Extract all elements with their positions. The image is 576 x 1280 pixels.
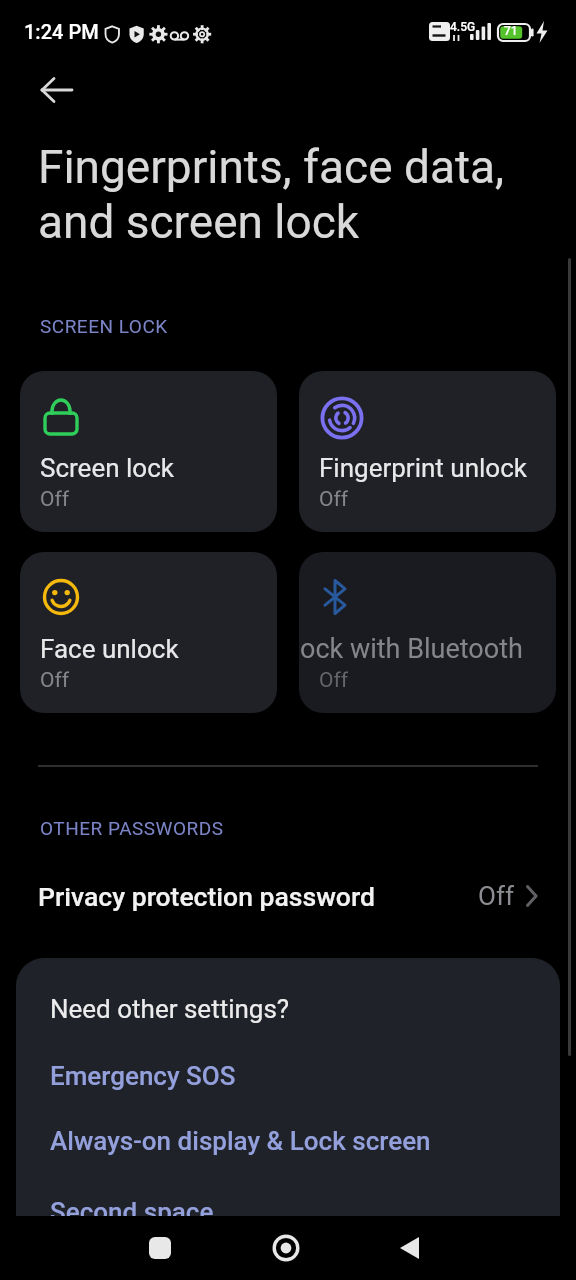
button[interactable] (388, 1226, 432, 1270)
staticText: Screen lock (40, 453, 174, 483)
button[interactable]: ock with Bluetooth (299, 552, 556, 713)
button[interactable]: Always-on display & Lock screen (50, 1126, 431, 1156)
button[interactable]: Fingerprint unlock (299, 371, 556, 532)
staticText: Off (40, 668, 70, 693)
staticText: Off (319, 668, 349, 693)
button[interactable]: Face unlock (20, 552, 277, 713)
button[interactable]: Privacy protection password (0, 866, 576, 926)
staticText: Fingerprints, face data, and screen lock (38, 140, 505, 249)
staticText: Off (478, 881, 514, 911)
staticText: Fingerprint unlock (319, 453, 527, 483)
button[interactable]: Second space (50, 1197, 214, 1227)
staticText: ock with Bluetooth (300, 633, 523, 665)
staticText: 71 (504, 24, 518, 38)
button[interactable]: Screen lock (20, 371, 277, 532)
button[interactable] (264, 1226, 308, 1270)
button[interactable] (138, 1226, 182, 1270)
staticText: SCREEN LOCK (40, 315, 168, 337)
button[interactable]: Emergency SOS (50, 1061, 236, 1091)
staticText: 1:24 PM (24, 20, 99, 43)
staticText: Off (40, 487, 70, 512)
staticText: Off (319, 487, 349, 512)
staticText: Privacy protection password (38, 881, 375, 912)
staticText: 4.5G (450, 20, 476, 34)
staticText: Face unlock (40, 634, 179, 664)
button[interactable] (30, 66, 82, 114)
staticText: Need other settings? (50, 994, 290, 1024)
staticText: OTHER PASSWORDS (40, 817, 224, 839)
